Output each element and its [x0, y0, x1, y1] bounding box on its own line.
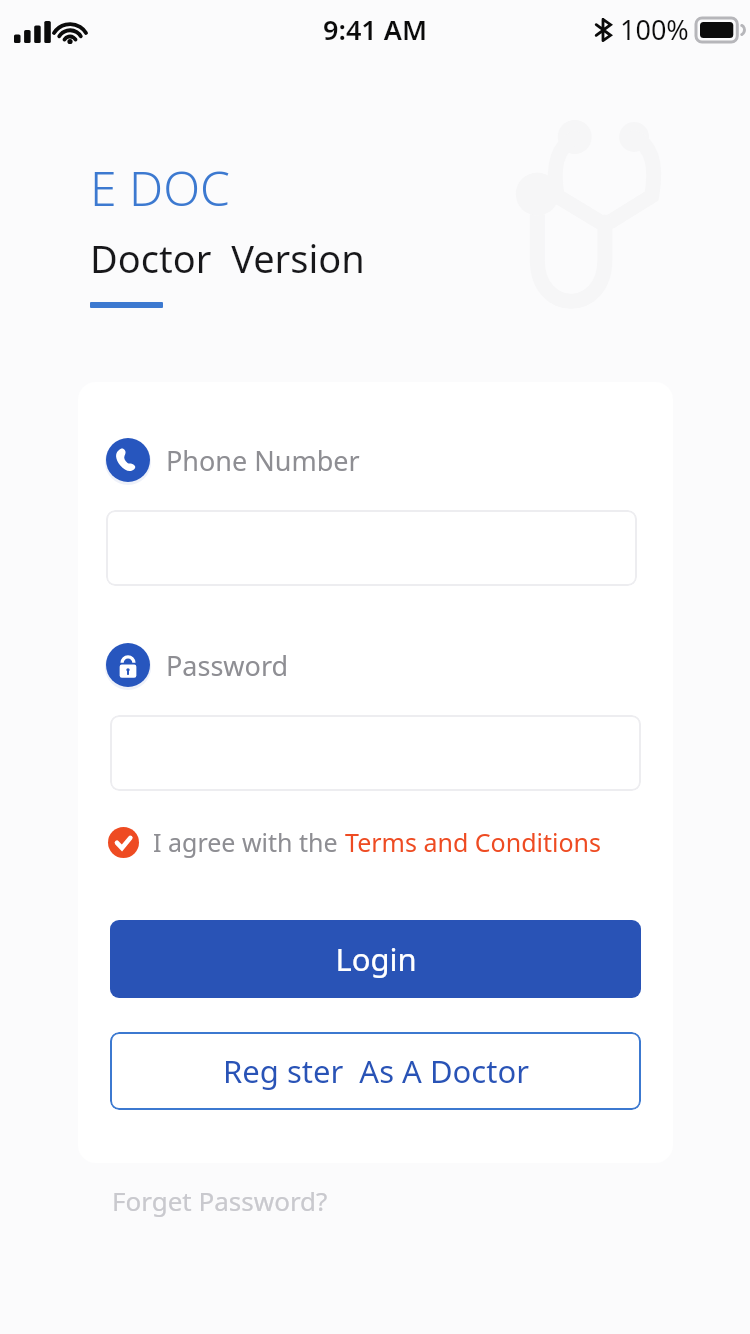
button[interactable] [110, 715, 641, 791]
staticText: I agree with the [153, 825, 345, 859]
staticText: E DOC [90, 155, 230, 220]
staticText: Reg ster As A Doctor [223, 1050, 529, 1092]
button[interactable]: Login [110, 920, 641, 998]
staticText: Login [335, 938, 417, 980]
button[interactable]: Terms and Conditions [345, 825, 602, 859]
staticText: Phone Number [166, 442, 360, 479]
button[interactable]: Forget Password? [112, 1183, 328, 1218]
button[interactable] [106, 510, 637, 586]
button[interactable]: Reg ster As A Doctor [110, 1032, 641, 1110]
staticText: 9:41 AM [323, 11, 428, 48]
button[interactable]: I agree with the [108, 825, 602, 859]
staticText: Password [166, 647, 289, 684]
staticText: Doctor Version [90, 232, 365, 284]
staticText: 100% [620, 11, 689, 48]
